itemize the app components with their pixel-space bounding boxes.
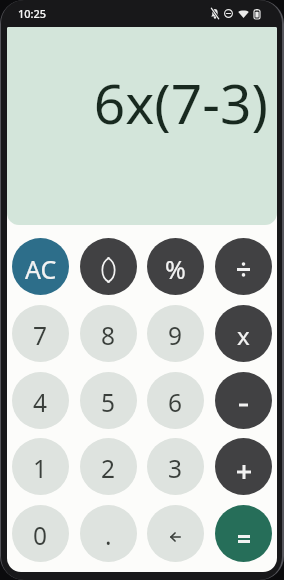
button[interactable]: 7 [12,305,69,362]
staticText: 10:25 [18,6,47,21]
staticText: 2 [101,452,116,485]
staticText: 5 [101,386,116,419]
button[interactable]: Backspace [147,505,204,562]
staticText: x [237,319,250,352]
button[interactable]: 1 [12,438,69,495]
button[interactable]: AC [12,238,69,295]
staticText: 3 [168,452,183,485]
staticText: 4 [33,386,48,419]
button[interactable]: Parentheses [80,238,137,295]
staticText: 0 [33,519,48,552]
staticText: 6x(7-3) [93,65,268,140]
button[interactable]: 8 [80,305,137,362]
staticText: AC [25,252,57,286]
staticText: . [105,519,112,552]
button[interactable]: 2 [80,438,137,495]
button[interactable]: Minus [215,372,272,429]
button[interactable]: 4 [12,372,69,429]
button[interactable]: Divide [215,238,272,295]
staticText: 7 [33,319,48,352]
staticText: 1 [33,452,48,485]
button[interactable]: 5 [80,372,137,429]
button[interactable]: % [147,238,204,295]
button[interactable]: 3 [147,438,204,495]
staticText: 8 [101,319,116,352]
button[interactable]: . [80,505,137,562]
staticText: 9 [168,319,183,352]
button[interactable]: 0 [12,505,69,562]
staticText: % [165,252,186,286]
button[interactable]: 6 [147,372,204,429]
button[interactable]: x [215,305,272,362]
staticText: 6 [168,386,183,419]
button[interactable]: 9 [147,305,204,362]
button[interactable]: Plus [215,438,272,495]
button[interactable]: Equals [215,505,272,562]
